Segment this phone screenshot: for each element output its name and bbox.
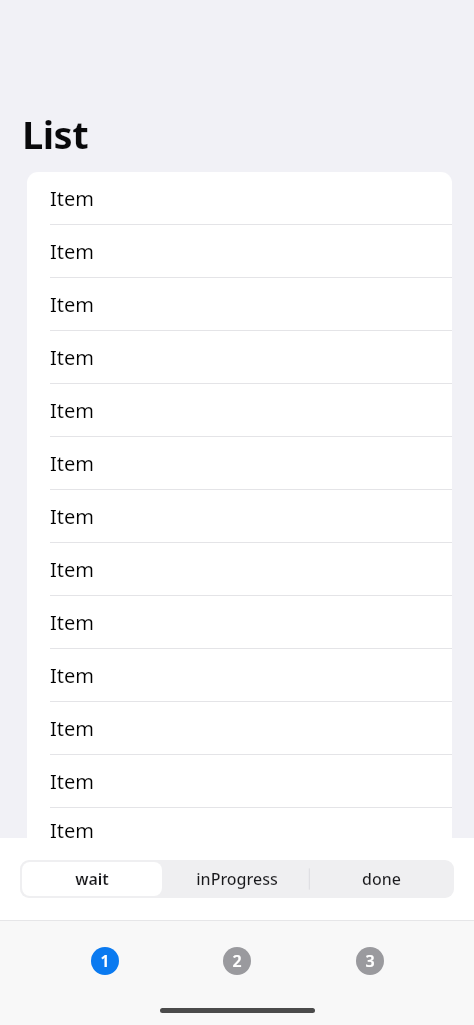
button[interactable]: Item xyxy=(27,755,452,808)
button[interactable]: Tab 3 xyxy=(342,933,398,989)
staticText: 1 xyxy=(100,950,110,972)
button[interactable]: Item xyxy=(27,384,452,437)
staticText: 3 xyxy=(365,950,375,972)
button[interactable]: Item xyxy=(27,278,452,331)
staticText: Item xyxy=(50,817,94,844)
button[interactable]: Item xyxy=(27,225,452,278)
staticText: Item xyxy=(50,450,94,477)
button[interactable]: Item xyxy=(27,808,452,852)
button[interactable]: wait xyxy=(22,862,162,896)
button[interactable]: Tab 1 xyxy=(77,933,133,989)
staticText: done xyxy=(362,868,401,890)
staticText: Item xyxy=(50,291,94,318)
staticText: Item xyxy=(50,609,94,636)
staticText: Item xyxy=(50,715,94,742)
staticText: List xyxy=(22,108,89,160)
staticText: Item xyxy=(50,662,94,689)
staticText: Item xyxy=(50,503,94,530)
button[interactable]: Item xyxy=(27,702,452,755)
staticText: Item xyxy=(50,768,94,795)
button[interactable]: Item xyxy=(27,172,452,225)
staticText: Item xyxy=(50,556,94,583)
staticText: Item xyxy=(50,344,94,371)
button[interactable]: Item xyxy=(27,490,452,543)
staticText: wait xyxy=(75,868,109,890)
button[interactable]: Item xyxy=(27,543,452,596)
button[interactable]: Item xyxy=(27,649,452,702)
button[interactable]: inProgress xyxy=(166,862,307,896)
staticText: Item xyxy=(50,185,94,212)
staticText: Item xyxy=(50,397,94,424)
button[interactable]: Tab 2 xyxy=(209,933,265,989)
staticText: 2 xyxy=(232,950,242,972)
staticText: Item xyxy=(50,238,94,265)
button[interactable]: Item xyxy=(27,437,452,490)
button[interactable]: done xyxy=(311,862,452,896)
button[interactable]: Item xyxy=(27,331,452,384)
button[interactable]: Item xyxy=(27,596,452,649)
staticText: inProgress xyxy=(196,868,278,890)
